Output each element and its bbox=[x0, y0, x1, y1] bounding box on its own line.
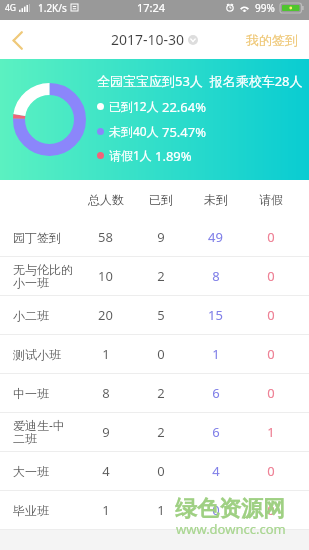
staticText: 1 bbox=[102, 345, 110, 363]
staticText: 0 bbox=[267, 501, 275, 519]
staticText: 1.89% bbox=[155, 147, 192, 163]
staticText: 1 bbox=[267, 423, 275, 441]
staticText: 0 bbox=[267, 267, 275, 285]
button[interactable]: Back bbox=[0, 23, 34, 57]
staticText: 17:24 bbox=[137, 0, 166, 15]
staticText: 0 bbox=[267, 345, 275, 363]
staticText: 小二班 bbox=[13, 308, 49, 323]
staticText: 20 bbox=[98, 306, 113, 324]
staticText: 未到 bbox=[204, 192, 228, 207]
staticText: 请假1人 bbox=[109, 147, 152, 163]
staticText: 我的签到 bbox=[246, 32, 298, 48]
staticText: 爱迪生-中 二班 bbox=[13, 417, 65, 447]
staticText: 园丁签到 bbox=[13, 230, 61, 245]
staticText: 已到 bbox=[149, 192, 173, 207]
staticText: 无与伦比的 小一班 bbox=[13, 262, 73, 291]
staticText: 测试小班 bbox=[13, 347, 61, 362]
staticText: 8 bbox=[102, 384, 110, 402]
staticText: 5 bbox=[157, 306, 165, 324]
staticText: 2017-10-30 bbox=[111, 30, 185, 49]
staticText: 4 bbox=[102, 462, 110, 480]
button[interactable]: 毕业班 bbox=[0, 491, 309, 530]
button[interactable]: 中一班 bbox=[0, 374, 309, 413]
button[interactable]: 爱迪生-中 二班 bbox=[0, 413, 309, 452]
staticText: 绿色资源网 bbox=[175, 495, 285, 523]
staticText: 49 bbox=[208, 228, 223, 246]
staticText: 9 bbox=[157, 228, 165, 246]
staticText: 1 bbox=[102, 501, 110, 519]
staticText: 99% bbox=[255, 1, 275, 15]
staticText: 6 bbox=[212, 384, 220, 402]
staticText: 中一班 bbox=[13, 386, 49, 401]
button[interactable]: 大一班 bbox=[0, 452, 309, 491]
staticText: 已到12人 bbox=[109, 98, 159, 114]
staticText: 0 bbox=[267, 306, 275, 324]
staticText: 0 bbox=[157, 345, 165, 363]
staticText: 毕业班 bbox=[13, 503, 49, 518]
staticText: 75.47% bbox=[162, 123, 207, 139]
staticText: 0 bbox=[267, 384, 275, 402]
staticText: 2 bbox=[157, 423, 165, 441]
staticText: 8 bbox=[212, 267, 220, 285]
staticText: 大一班 bbox=[13, 464, 49, 479]
staticText: 2 bbox=[157, 384, 165, 402]
staticText: 0 bbox=[212, 501, 220, 519]
staticText: 0 bbox=[267, 462, 275, 480]
button[interactable]: 小二班 bbox=[0, 296, 309, 335]
button[interactable]: 2017-10-30 bbox=[107, 25, 202, 54]
staticText: 0 bbox=[267, 228, 275, 246]
staticText: 请假 bbox=[259, 192, 283, 207]
staticText: 全园宝宝应到53人 报名乘校车28人 bbox=[97, 72, 303, 90]
button[interactable]: 我的签到 bbox=[235, 24, 309, 56]
staticText: 58 bbox=[98, 228, 113, 246]
button[interactable]: 无与伦比的 小一班 bbox=[0, 257, 309, 296]
staticText: 4 bbox=[212, 462, 220, 480]
staticText: 0 bbox=[157, 462, 165, 480]
button[interactable]: 测试小班 bbox=[0, 335, 309, 374]
staticText: 15 bbox=[208, 306, 223, 324]
staticText: 22.64% bbox=[162, 98, 207, 114]
staticText: 1.2K/s bbox=[38, 1, 67, 15]
staticText: 1 bbox=[212, 345, 220, 363]
staticText: 未到40人 bbox=[109, 123, 159, 139]
staticText: 4G bbox=[5, 2, 17, 14]
staticText: 1 bbox=[157, 501, 165, 519]
staticText: 总人数 bbox=[88, 192, 124, 207]
staticText: 6 bbox=[212, 423, 220, 441]
button[interactable]: 园丁签到 bbox=[0, 218, 309, 257]
staticText: www.downcc.com bbox=[176, 520, 286, 538]
staticText: 2 bbox=[157, 267, 165, 285]
staticText: 10 bbox=[98, 267, 113, 285]
staticText: 9 bbox=[102, 423, 110, 441]
